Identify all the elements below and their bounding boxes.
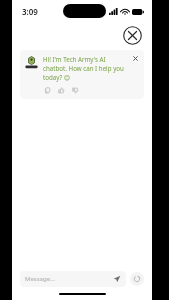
button[interactable]: Reset conversation xyxy=(130,272,144,286)
button[interactable]: Close xyxy=(123,26,142,45)
button[interactable]: Thumbs down xyxy=(72,87,79,94)
staticText: Message... xyxy=(25,275,113,283)
button[interactable]: Thumbs up xyxy=(58,87,65,94)
button[interactable]: Dismiss message xyxy=(132,55,139,62)
staticText: 3:09 xyxy=(22,6,38,17)
button[interactable]: Message... xyxy=(20,271,126,287)
staticText: Hi! I'm Tech Army's AI chatbot. How can … xyxy=(43,55,130,82)
button[interactable]: Send xyxy=(113,275,121,283)
button[interactable]: Copy xyxy=(44,87,51,94)
